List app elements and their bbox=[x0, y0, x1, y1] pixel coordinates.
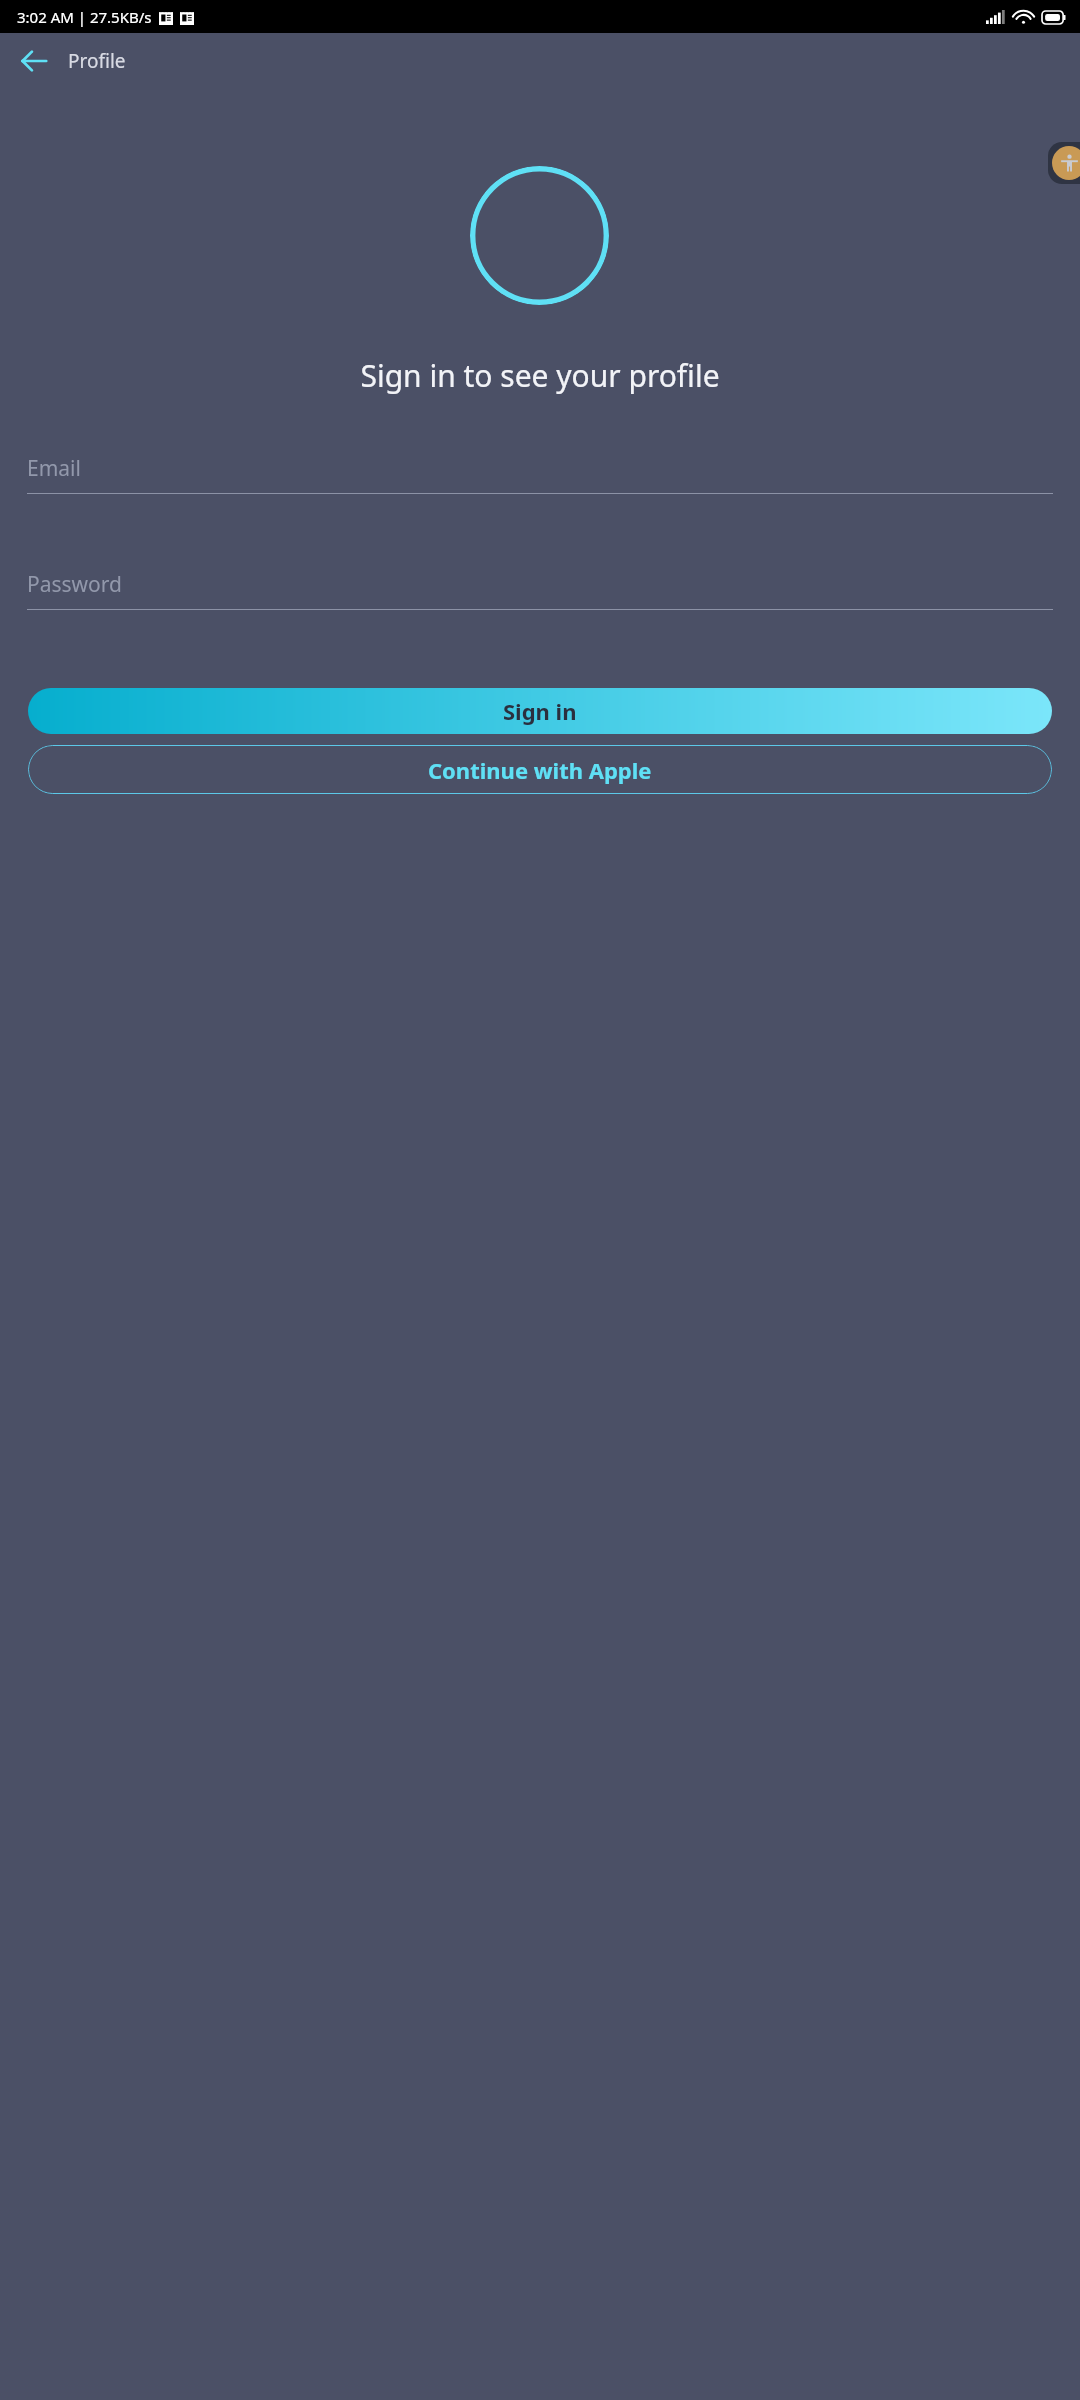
staticText: Email bbox=[27, 454, 81, 483]
button[interactable]: Continue with Apple bbox=[28, 745, 1052, 794]
staticText: Profile bbox=[68, 48, 126, 74]
button[interactable]: Back bbox=[12, 39, 56, 83]
button[interactable]: Password bbox=[27, 570, 1053, 610]
button[interactable]: Email bbox=[27, 454, 1053, 494]
button[interactable]: Sign in bbox=[28, 688, 1052, 734]
staticText: 3:02 AM | 27.5KB/s bbox=[17, 7, 152, 27]
staticText: Sign in to see your profile bbox=[360, 355, 720, 396]
button[interactable]: Accessibility menu bbox=[1048, 142, 1080, 184]
staticText: Password bbox=[27, 570, 122, 599]
staticText: Continue with Apple bbox=[428, 755, 652, 785]
staticText: Sign in bbox=[503, 696, 577, 726]
button[interactable]: Profile photo bbox=[470, 166, 609, 305]
